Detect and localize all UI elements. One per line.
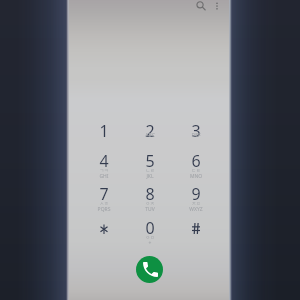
button[interactable]: 5 [127, 150, 173, 180]
staticText: WXYZ [173, 206, 219, 213]
staticText: 0 [127, 217, 173, 239]
staticText: 3 [173, 120, 219, 142]
button[interactable]: 2 [127, 120, 173, 150]
staticText: GHI [81, 173, 127, 180]
button[interactable]: 3 [173, 120, 219, 150]
staticText: ㅇㅁ [127, 235, 173, 241]
button[interactable]: 0 [127, 217, 173, 247]
staticText: ㅊㅍ [173, 201, 219, 207]
button[interactable]: More options [207, 0, 227, 16]
staticText: MNO [173, 173, 219, 180]
button[interactable]: Call [136, 256, 163, 283]
button[interactable]: 7 [81, 183, 127, 213]
button[interactable] [81, 217, 127, 247]
staticText: 5 [127, 150, 173, 172]
staticText: 2 [127, 120, 173, 142]
button[interactable]: 6 [173, 150, 219, 180]
staticText: 4 [81, 150, 127, 172]
staticText: ㅅㅎ [81, 201, 127, 207]
button[interactable]: Search [190, 0, 212, 17]
button[interactable]: 9 [173, 183, 219, 213]
staticText: 8 [127, 183, 173, 205]
staticText: ㄷㅌ [173, 168, 219, 174]
button[interactable] [173, 217, 219, 247]
button[interactable]: 1 [81, 120, 127, 150]
staticText: ㄴㄹ [127, 168, 173, 174]
staticText: ABC [127, 132, 173, 139]
staticText: ㅇㅈ [127, 201, 173, 207]
staticText: JKL [127, 173, 173, 180]
staticText: 6 [173, 150, 219, 172]
staticText: 1 [81, 120, 127, 142]
staticText: 9 [173, 183, 219, 205]
button[interactable]: 4 [81, 150, 127, 180]
staticText: DEF [173, 132, 219, 139]
staticText: 7 [81, 183, 127, 205]
staticText: TUV [127, 206, 173, 213]
button[interactable]: 8 [127, 183, 173, 213]
staticText: PQRS [81, 206, 127, 213]
